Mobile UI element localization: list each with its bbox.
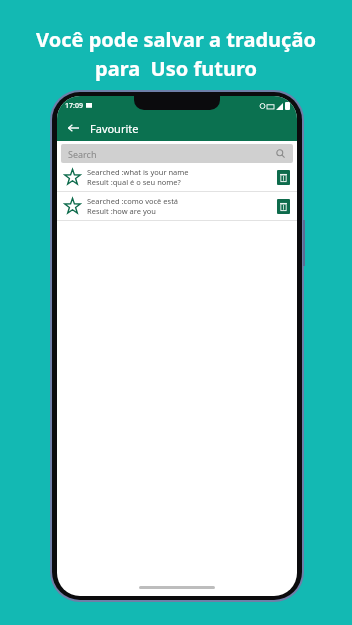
- button[interactable]: Delete: [277, 199, 290, 214]
- staticText: Você pode salvar a tradução: [36, 26, 316, 53]
- button[interactable]: Search: [61, 144, 293, 163]
- staticText: para Uso futuro: [95, 55, 257, 82]
- button[interactable]: Searched :como você está: [57, 192, 297, 220]
- staticText: Result :qual é o seu nome?: [87, 177, 181, 187]
- staticText: 17:09: [65, 101, 83, 111]
- button[interactable]: Searched :what is your name: [57, 163, 297, 191]
- staticText: Search: [68, 148, 97, 160]
- staticText: Searched :what is your name: [87, 167, 189, 177]
- button[interactable]: Back: [64, 119, 82, 137]
- staticText: Favourite: [90, 121, 139, 136]
- staticText: Result :how are you: [87, 206, 156, 216]
- staticText: Searched :como você está: [87, 196, 179, 206]
- button[interactable]: Delete: [277, 170, 290, 185]
